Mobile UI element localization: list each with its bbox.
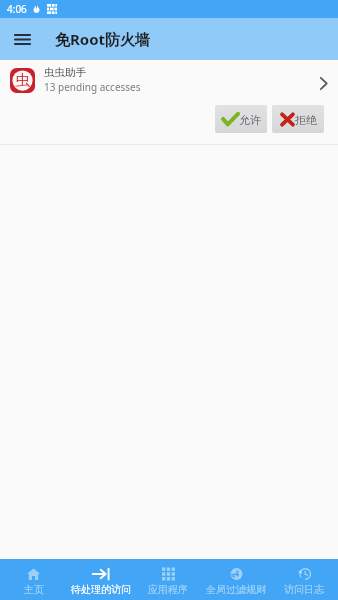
button[interactable]: 拒绝 (272, 105, 324, 133)
button[interactable]: Open navigation menu (0, 18, 44, 60)
button[interactable]: 主页 (0, 559, 67, 600)
staticText: 全局过滤规则 (206, 583, 266, 596)
button[interactable]: Show details (312, 69, 334, 91)
button[interactable]: 允许 (215, 105, 267, 133)
button[interactable]: 访问日志 (270, 559, 338, 600)
staticText: 免Root防火墙 (55, 29, 151, 49)
staticText: 虫虫助手 (44, 66, 86, 79)
staticText: 待处理的访问 (71, 583, 131, 596)
button[interactable]: 应用程序 (134, 559, 202, 600)
staticText: 13 pending accesses (44, 80, 141, 94)
button[interactable]: 全局过滤规则 (202, 559, 270, 600)
staticText: 访问日志 (284, 583, 324, 596)
staticText: 4:06 (7, 2, 27, 16)
staticText: 拒绝 (295, 113, 317, 127)
button[interactable]: 虫 (0, 60, 338, 145)
staticText: 应用程序 (148, 583, 188, 596)
staticText: 虫 (15, 71, 30, 90)
staticText: 主页 (24, 583, 44, 596)
staticText: 允许 (239, 113, 261, 127)
button[interactable]: 待处理的访问 (67, 559, 134, 600)
